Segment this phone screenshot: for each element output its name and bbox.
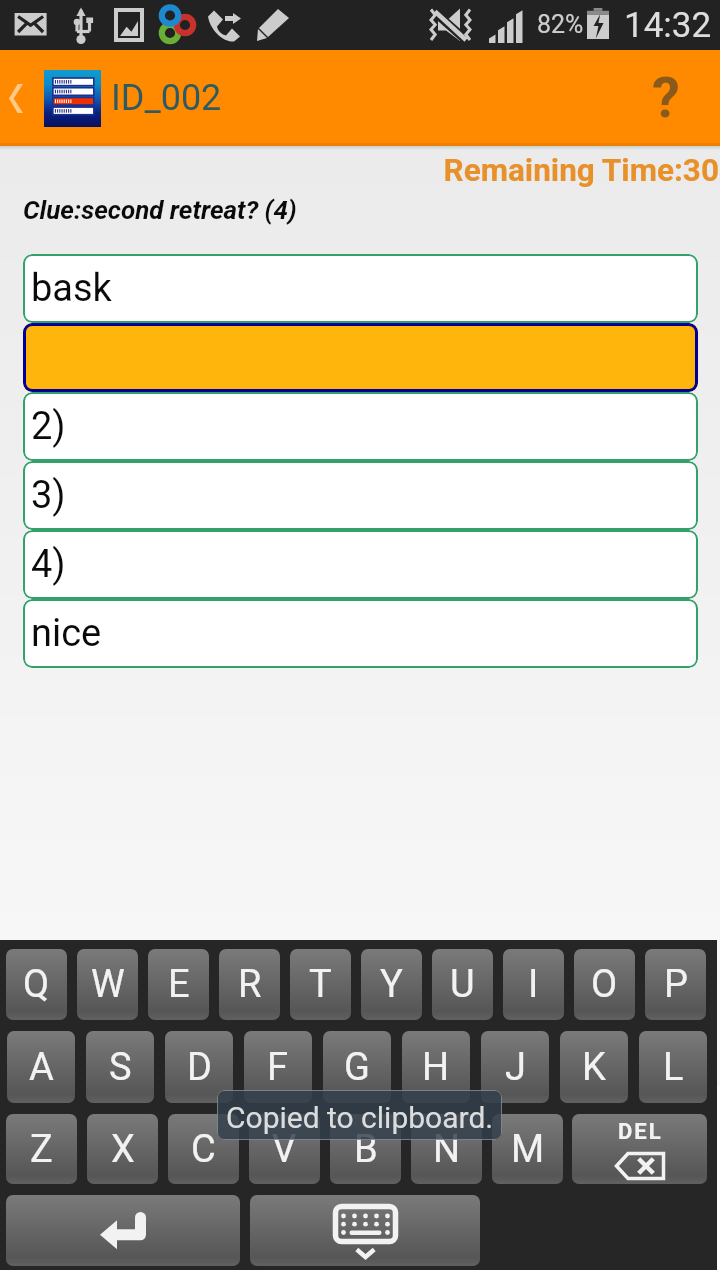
button[interactable]: C <box>168 1114 239 1184</box>
button[interactable]: J <box>481 1031 549 1103</box>
staticText: O <box>591 962 618 1007</box>
button[interactable]: O <box>574 949 635 1020</box>
staticText: ? <box>652 65 680 131</box>
button[interactable]: B <box>330 1114 401 1184</box>
staticText: D <box>187 1045 212 1090</box>
button[interactable]: R <box>219 949 280 1020</box>
button[interactable]: Delete <box>572 1114 707 1184</box>
staticText: E <box>168 962 190 1007</box>
button[interactable]: K <box>560 1031 628 1103</box>
button[interactable]: M <box>492 1114 563 1184</box>
staticText: Q <box>23 962 50 1007</box>
staticText: 82% <box>537 10 584 39</box>
button[interactable]: 4) <box>23 530 698 599</box>
staticText: X <box>111 1127 135 1172</box>
staticText: H <box>422 1045 450 1090</box>
staticText: 2) <box>31 404 66 449</box>
staticText: R <box>238 962 262 1007</box>
staticText: F <box>267 1045 289 1090</box>
staticText: Z <box>30 1127 53 1172</box>
button[interactable] <box>23 323 698 392</box>
button[interactable]: V <box>249 1114 320 1184</box>
button[interactable]: nice <box>23 599 698 668</box>
button[interactable]: Q <box>6 949 67 1020</box>
button[interactable]: Enter <box>6 1195 240 1266</box>
staticText: U <box>450 962 475 1007</box>
staticText: DEL <box>618 1119 663 1145</box>
staticText: S <box>109 1045 132 1090</box>
button[interactable]: A <box>7 1031 75 1103</box>
button[interactable]: E <box>148 949 209 1020</box>
staticText: W <box>91 962 125 1007</box>
button[interactable]: H <box>402 1031 470 1103</box>
button[interactable]: T <box>290 949 351 1020</box>
button[interactable]: Back <box>0 50 44 146</box>
button[interactable]: L <box>639 1031 707 1103</box>
staticText: Remaining Time:30 <box>0 152 719 189</box>
button[interactable]: 3) <box>23 461 698 530</box>
button[interactable]: Z <box>6 1114 77 1184</box>
staticText: bask <box>31 266 112 311</box>
staticText: 14:32 <box>624 5 712 46</box>
button[interactable]: U <box>432 949 493 1020</box>
staticText: Copied to clipboard. <box>226 1100 494 1135</box>
button[interactable]: P <box>645 949 706 1020</box>
staticText: M <box>511 1127 545 1172</box>
button[interactable]: I <box>503 949 564 1020</box>
staticText: ID_002 <box>111 77 222 119</box>
button[interactable]: S <box>86 1031 154 1103</box>
staticText: Y <box>380 962 403 1007</box>
button[interactable]: 2) <box>23 392 698 461</box>
staticText: T <box>309 962 332 1007</box>
button[interactable]: X <box>87 1114 158 1184</box>
button[interactable]: F <box>244 1031 312 1103</box>
button[interactable]: Y <box>361 949 422 1020</box>
staticText: J <box>505 1045 526 1090</box>
button[interactable]: W <box>77 949 138 1020</box>
button[interactable]: G <box>323 1031 391 1103</box>
button[interactable]: Hide keyboard <box>250 1195 480 1266</box>
staticText: K <box>582 1045 606 1090</box>
staticText: Clue:second retreat? (4) <box>23 195 297 225</box>
staticText: 3) <box>31 473 66 518</box>
staticText: V <box>272 1127 297 1172</box>
button[interactable]: N <box>411 1114 482 1184</box>
staticText: P <box>664 962 688 1007</box>
staticText: A <box>29 1045 54 1090</box>
staticText: B <box>354 1127 378 1172</box>
button[interactable]: Help <box>626 50 706 146</box>
staticText: nice <box>31 611 102 656</box>
staticText: N <box>433 1127 461 1172</box>
staticText: L <box>663 1045 684 1090</box>
staticText: C <box>191 1127 216 1172</box>
button[interactable]: D <box>165 1031 233 1103</box>
staticText: I <box>528 962 539 1007</box>
staticText: 4) <box>31 542 66 587</box>
staticText: G <box>344 1045 370 1090</box>
button[interactable]: bask <box>23 254 698 323</box>
